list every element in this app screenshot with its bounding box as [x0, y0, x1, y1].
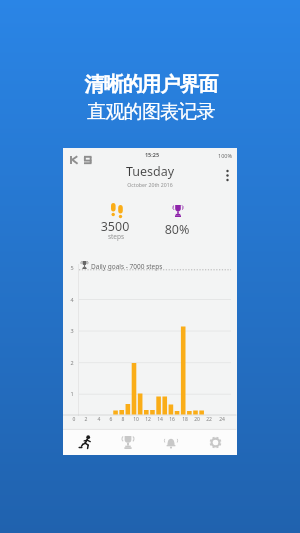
staticText: 10 — [131, 416, 141, 423]
staticText: 2 — [68, 359, 76, 366]
staticText: 6 — [106, 416, 116, 423]
staticText: 0 — [69, 416, 79, 423]
staticText: 5 — [68, 264, 76, 271]
staticText: 直观的图表记录 — [1, 100, 300, 124]
staticText: 24 — [217, 416, 227, 423]
button[interactable] — [222, 168, 233, 184]
staticText: 14 — [155, 416, 165, 423]
staticText: 15:25 — [65, 151, 239, 158]
staticText: steps — [76, 232, 156, 241]
staticText: 清晰的用户界面 — [1, 72, 300, 97]
button[interactable] — [205, 429, 225, 455]
staticText: 16 — [167, 416, 177, 423]
staticText: Daily goals - 7000 steps — [91, 262, 163, 271]
button[interactable] — [75, 429, 95, 455]
button[interactable] — [118, 429, 138, 455]
staticText: 2 — [81, 416, 91, 423]
staticText: 100% — [58, 152, 232, 159]
staticText: 3500 — [75, 218, 155, 235]
staticText: 3 — [68, 327, 76, 334]
staticText: 22 — [204, 416, 214, 423]
staticText: 18 — [180, 416, 190, 423]
button[interactable] — [161, 429, 181, 455]
staticText: Tuesday — [63, 163, 237, 180]
staticText: 12 — [143, 416, 153, 423]
staticText: 8 — [118, 416, 128, 423]
staticText: 80% — [137, 221, 217, 238]
staticText: 4 — [68, 296, 76, 303]
staticText: October 20th 2016 — [63, 181, 237, 188]
staticText: 20 — [192, 416, 202, 423]
staticText: 1 — [68, 390, 76, 397]
staticText: 4 — [94, 416, 104, 423]
